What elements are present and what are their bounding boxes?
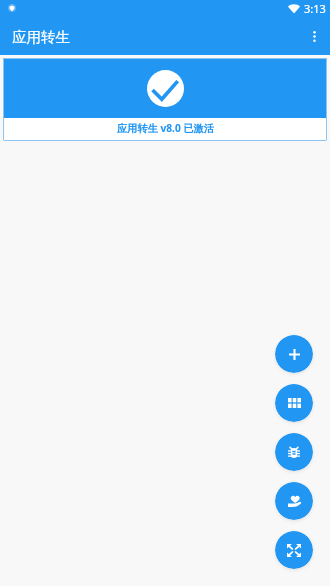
button[interactable]: More options: [299, 17, 330, 55]
staticText: 3:13: [304, 1, 326, 16]
button[interactable]: 应用转生 v8.0 已激活: [3, 58, 327, 141]
button[interactable]: Apps: [275, 384, 313, 422]
staticText: 应用转生: [12, 28, 70, 46]
button[interactable]: Add: [275, 335, 313, 373]
staticText: 应用转生 v8.0 已激活: [117, 121, 214, 135]
button[interactable]: Fullscreen: [275, 531, 313, 569]
button[interactable]: Bug report: [275, 433, 313, 471]
button[interactable]: Donate: [275, 482, 313, 520]
